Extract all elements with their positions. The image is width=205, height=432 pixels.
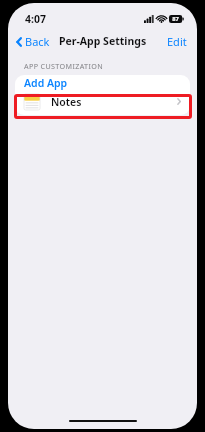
button[interactable]: Notes [15, 90, 190, 113]
staticText: Add App [24, 76, 68, 90]
button[interactable]: Back [8, 32, 56, 51]
staticText: Edit [167, 34, 187, 49]
staticText: Notes [51, 95, 82, 109]
staticText: Back [25, 34, 50, 49]
staticText: Per-App Settings [59, 34, 147, 48]
staticText: APP CUSTOMIZATION [24, 61, 103, 71]
button[interactable]: Edit [157, 31, 197, 52]
staticText: 4:07 [25, 12, 46, 26]
staticText: 87 [172, 15, 179, 23]
button[interactable]: Add App [15, 75, 190, 90]
